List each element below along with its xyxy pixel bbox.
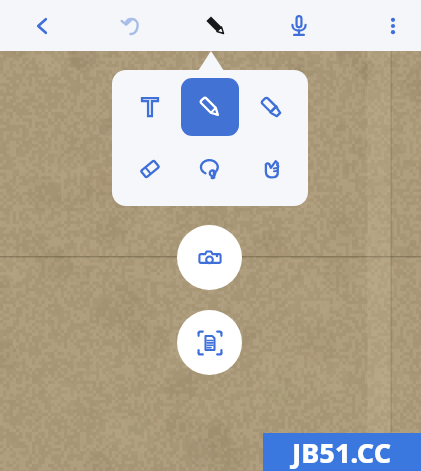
button[interactable]: Scan document	[177, 310, 242, 375]
button[interactable]: Take photo	[177, 225, 242, 290]
button[interactable]: Pen tool	[180, 0, 252, 51]
button[interactable]: More options	[365, 0, 421, 51]
button[interactable]: Eraser tool	[121, 140, 179, 198]
button[interactable]: Highlighter tool	[242, 78, 300, 136]
button[interactable]: Back	[0, 0, 84, 51]
button[interactable]: Pen tool	[181, 78, 239, 136]
button[interactable]: Text tool	[121, 78, 179, 136]
button[interactable]: Hand tool	[242, 140, 300, 198]
button[interactable]: Undo	[84, 0, 180, 51]
button[interactable]: Voice input	[252, 0, 346, 51]
button[interactable]: Lasso select tool	[181, 140, 239, 198]
staticText: JB51.CC	[292, 434, 392, 471]
